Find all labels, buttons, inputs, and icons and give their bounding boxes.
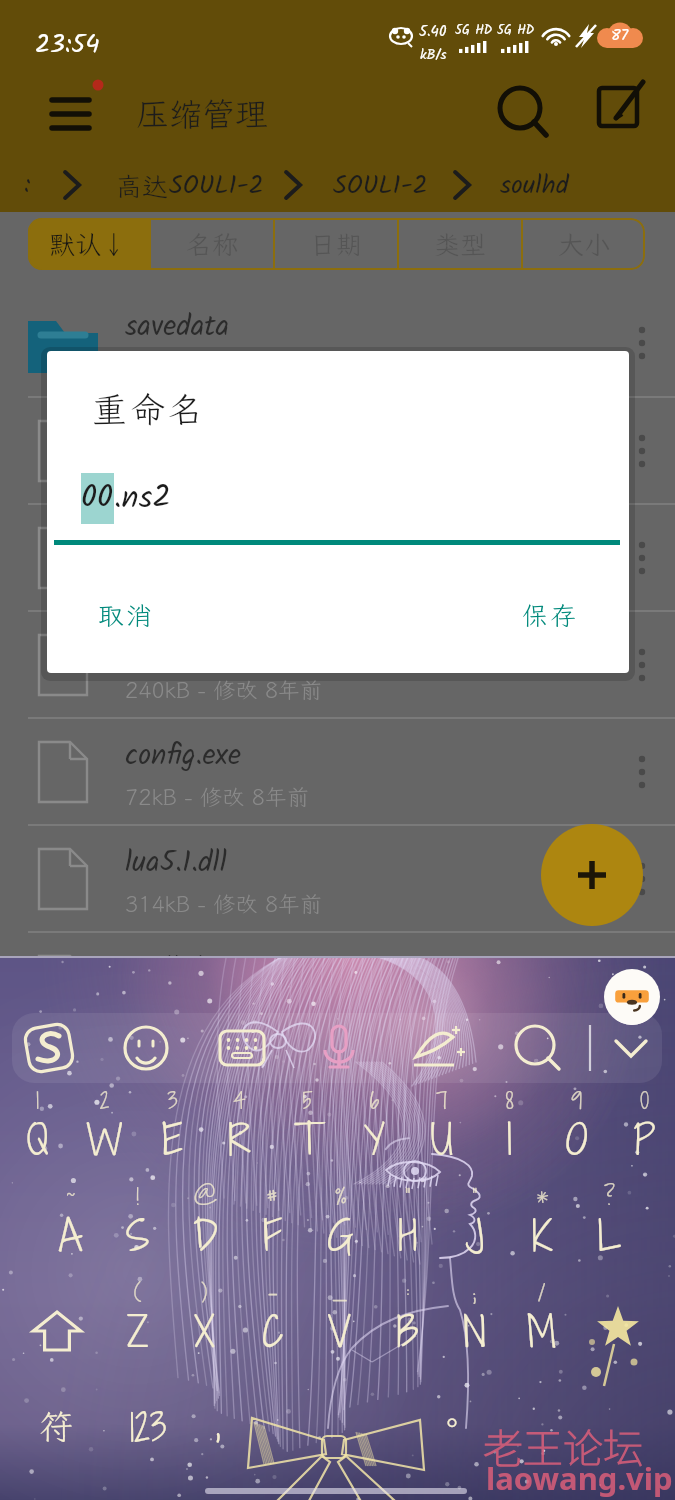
button[interactable]: 名称	[151, 218, 273, 270]
button[interactable]: 6	[341, 1084, 408, 1176]
button[interactable]: ”	[441, 1180, 508, 1272]
staticText: config.exe	[125, 733, 241, 779]
staticText: -	[239, 1276, 306, 1308]
staticText: 默认↓	[49, 227, 128, 261]
button[interactable]: More options	[609, 934, 675, 1038]
button[interactable]: 大小	[523, 218, 645, 270]
button[interactable]: #	[239, 1180, 306, 1272]
button[interactable]: main.dat	[0, 612, 675, 717]
button[interactable]: 2	[71, 1084, 138, 1176]
staticText: 名称	[186, 227, 239, 261]
button[interactable]: _	[306, 1276, 373, 1368]
staticText: 5G HD	[455, 20, 493, 41]
staticText: 5.40	[419, 20, 447, 44]
staticText: 314kB - 修改 8年前	[125, 889, 323, 918]
button[interactable]: Edit	[586, 80, 654, 148]
staticText: 重命名	[92, 386, 207, 432]
button[interactable]: 5	[274, 1084, 341, 1176]
staticText: 72kB - 修改 8年前	[125, 782, 309, 811]
button[interactable]: :	[374, 1276, 441, 1368]
button[interactable]: (	[104, 1276, 171, 1368]
button[interactable]: ~	[37, 1180, 104, 1272]
button[interactable]: ;	[441, 1276, 508, 1368]
staticText: kB/s	[420, 44, 447, 66]
staticText: .ns2	[114, 473, 171, 524]
button[interactable]: config.exe	[0, 719, 675, 824]
button[interactable]: More options	[609, 291, 675, 395]
button[interactable]: ,	[188, 1396, 248, 1456]
staticText: 0	[611, 1084, 675, 1116]
button[interactable]: 符	[26, 1404, 86, 1458]
staticText: 00	[81, 473, 114, 524]
button[interactable]: Shift	[26, 1306, 88, 1356]
staticText: C	[239, 1302, 306, 1360]
staticText: O	[543, 1110, 610, 1168]
button[interactable]: 类型	[399, 218, 521, 270]
button[interactable]: More options	[609, 827, 675, 931]
staticText: B	[374, 1302, 441, 1360]
button[interactable]: 8	[476, 1084, 543, 1176]
button[interactable]: More options	[609, 720, 675, 824]
button[interactable]: Menu	[40, 76, 104, 148]
button[interactable]: More options	[609, 506, 675, 610]
button[interactable]: Space	[262, 1394, 422, 1458]
button[interactable]: Assistant	[604, 969, 660, 1025]
button[interactable]: *	[509, 1180, 576, 1272]
button[interactable]: !	[104, 1180, 171, 1272]
button[interactable]: 4	[206, 1084, 273, 1176]
staticText: E	[139, 1110, 206, 1168]
staticText: 00.ns2	[125, 412, 206, 458]
staticText: 2	[71, 1084, 138, 1116]
button[interactable]: ?	[576, 1180, 643, 1272]
button[interactable]: )	[171, 1276, 238, 1368]
staticText: ,	[188, 1396, 248, 1451]
staticText: K	[509, 1206, 576, 1264]
button[interactable]: -	[239, 1276, 306, 1368]
button[interactable]: More options	[609, 399, 675, 503]
button[interactable]: “	[374, 1180, 441, 1272]
staticText: /	[508, 1276, 575, 1308]
button[interactable]: More options	[609, 613, 675, 717]
button[interactable]: data.bin	[0, 505, 675, 610]
staticText: :	[24, 164, 31, 205]
button[interactable]: 取消	[85, 589, 167, 641]
staticText: G	[307, 1206, 374, 1264]
button[interactable]: %	[307, 1180, 374, 1272]
staticText: 老王论坛	[483, 1417, 643, 1475]
button[interactable]: 0	[611, 1084, 675, 1176]
button[interactable]: /	[508, 1276, 575, 1368]
button[interactable]: 默认↓	[28, 218, 149, 270]
staticText: )	[171, 1276, 238, 1308]
staticText: 取消	[98, 598, 155, 632]
staticText: 高达	[116, 169, 169, 203]
button[interactable]: 日期	[275, 218, 397, 270]
staticText: %	[307, 1180, 374, 1212]
staticText: _	[306, 1276, 373, 1308]
staticText: SOUL1-2	[333, 165, 428, 206]
button[interactable]: 。	[422, 1400, 482, 1456]
button[interactable]: @	[172, 1180, 239, 1272]
button[interactable]: soulhd.exe	[0, 933, 675, 1038]
staticText: R	[206, 1110, 273, 1168]
button[interactable]: 9	[543, 1084, 610, 1176]
button[interactable]: 7	[408, 1084, 475, 1176]
staticText: M	[508, 1302, 575, 1360]
button[interactable]: 保存	[509, 589, 591, 641]
staticText: 类型	[434, 227, 487, 261]
button[interactable]: Search	[488, 80, 556, 148]
staticText: SOUL1-2	[169, 165, 264, 206]
staticText: 6	[341, 1084, 408, 1116]
button[interactable]: 00.ns2	[0, 398, 675, 503]
staticText: Y	[341, 1110, 408, 1168]
button[interactable]: lua5.1.dll	[0, 826, 675, 931]
button[interactable]: Add	[541, 824, 643, 926]
button[interactable]: 123	[106, 1402, 190, 1456]
button[interactable]: 3	[139, 1084, 206, 1176]
staticText: 压缩管理	[136, 92, 268, 135]
staticText: soulhd.exe	[125, 947, 247, 993]
staticText: savedata	[125, 304, 230, 350]
button[interactable]: 1	[4, 1084, 71, 1176]
button[interactable]: savedata	[0, 290, 675, 396]
staticText: 。	[422, 1400, 482, 1445]
